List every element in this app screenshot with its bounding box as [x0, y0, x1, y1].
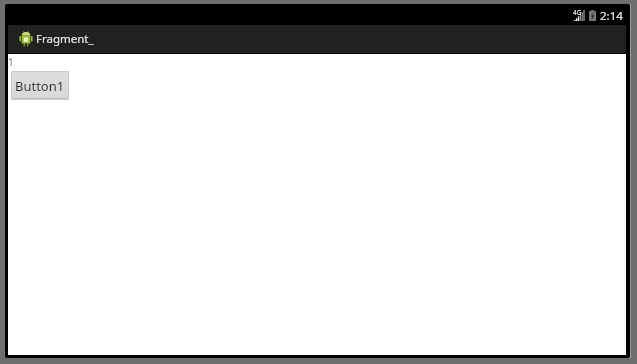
other: Signal strength 4G	[573, 10, 585, 21]
staticText: Button1	[15, 77, 65, 95]
staticText: 1	[8, 55, 14, 69]
button[interactable]: Button1	[11, 71, 69, 100]
staticText: Fragment_	[36, 31, 94, 47]
staticText: 4G	[573, 8, 582, 17]
button[interactable]: App icon	[8, 25, 626, 53]
other: App icon	[19, 31, 33, 47]
staticText: 2:14	[600, 8, 623, 24]
other: Battery charging	[589, 10, 596, 21]
